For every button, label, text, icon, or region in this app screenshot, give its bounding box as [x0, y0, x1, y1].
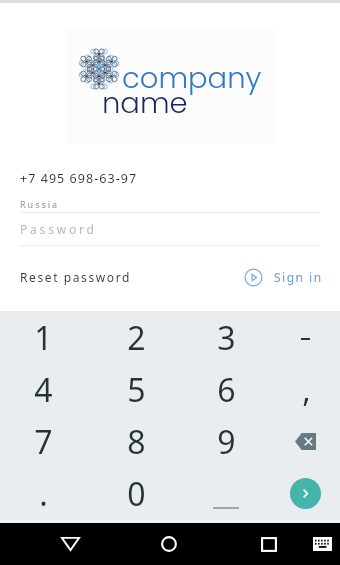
staticText: Reset password [20, 269, 131, 285]
staticText: 9 [217, 420, 236, 464]
staticText: Password [20, 221, 97, 237]
button[interactable] [88, 311, 182, 364]
staticText: 6 [217, 368, 236, 412]
button[interactable]: +7 495 698-63-97 [20, 165, 320, 195]
button[interactable] [266, 364, 340, 417]
button[interactable] [266, 311, 340, 364]
button[interactable]: Switch keyboard [306, 530, 338, 558]
staticText: Russia [20, 198, 60, 210]
button[interactable] [266, 416, 340, 469]
button[interactable] [182, 469, 266, 522]
button[interactable]: Enter [290, 478, 321, 509]
button[interactable]: Home [149, 526, 189, 562]
staticText: 3 [217, 316, 236, 360]
button[interactable] [0, 364, 88, 417]
staticText: Sign in [274, 269, 323, 285]
staticText: company [122, 58, 262, 99]
staticText: 5 [127, 368, 146, 412]
staticText: 7 [34, 420, 53, 464]
staticText: 4 [34, 368, 53, 412]
button[interactable]: Password [20, 221, 320, 245]
staticText: name [102, 83, 188, 124]
button[interactable] [182, 311, 266, 364]
button[interactable] [88, 364, 182, 417]
staticText: , [302, 368, 311, 412]
staticText: 2 [127, 316, 146, 360]
button[interactable]: Back [50, 526, 90, 562]
button[interactable] [0, 469, 88, 522]
other: Backspace [295, 433, 316, 450]
staticText: +7 495 698-63-97 [20, 170, 138, 187]
button[interactable] [266, 469, 340, 522]
button[interactable]: Reset password [20, 266, 135, 288]
button[interactable]: Recents [249, 526, 289, 562]
button[interactable] [182, 416, 266, 469]
button[interactable] [0, 311, 88, 364]
staticText: 8 [127, 420, 146, 464]
staticText: 0 [127, 472, 146, 516]
button[interactable] [88, 416, 182, 469]
staticText: 1 [34, 316, 53, 360]
button[interactable] [0, 416, 88, 469]
button[interactable] [88, 469, 182, 522]
button[interactable] [182, 364, 266, 417]
button[interactable]: Sign in [244, 266, 323, 288]
staticText: . [39, 472, 48, 516]
